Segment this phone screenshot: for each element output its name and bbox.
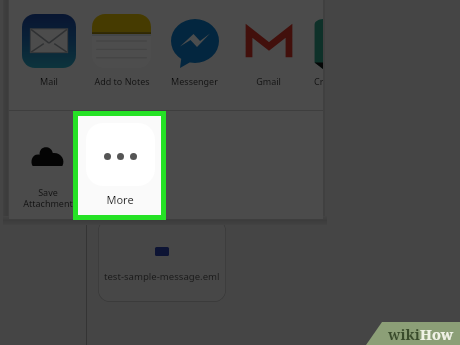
button[interactable]: More [78, 116, 161, 215]
button[interactable]: Gmail [232, 14, 305, 94]
button[interactable]: Save Attachment [11, 113, 84, 209]
button[interactable]: Add to Notes [85, 14, 158, 94]
button[interactable]: Mail [12, 14, 85, 94]
button[interactable]: test-sample-message.eml [98, 219, 226, 302]
staticText: More [106, 192, 134, 207]
staticText: wiki [388, 324, 420, 344]
staticText: Gmail [256, 75, 281, 87]
staticText: Mail [40, 75, 58, 87]
staticText: Create PDF [314, 75, 323, 87]
button[interactable]: Messenger [158, 14, 231, 94]
staticText: Messenger [171, 75, 218, 87]
staticText: How [420, 324, 454, 344]
staticText: Save Attachment [23, 186, 73, 209]
staticText: test-sample-message.eml [104, 270, 220, 283]
staticText: Add to Notes [94, 75, 150, 87]
